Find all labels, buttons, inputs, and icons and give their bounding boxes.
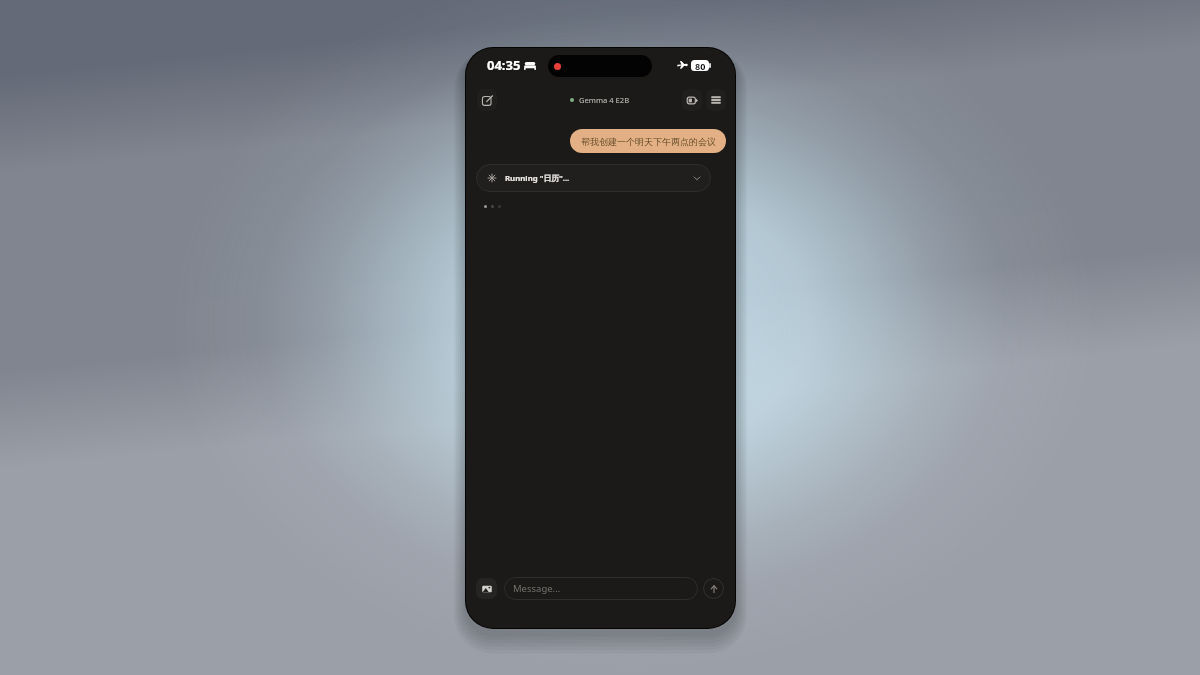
button[interactable]: Context usage bbox=[682, 89, 702, 111]
staticText: Running "日历"... bbox=[505, 173, 570, 184]
button[interactable]: Running "日历"... bbox=[476, 164, 711, 192]
staticText: 80 bbox=[695, 60, 706, 71]
button[interactable]: Send bbox=[703, 578, 724, 599]
button[interactable]: 帮我创建一个明天下午两点的会议 bbox=[570, 129, 726, 153]
button[interactable]: Attach image bbox=[476, 578, 497, 599]
staticText: Message... bbox=[513, 582, 561, 595]
button[interactable]: Settings bbox=[706, 89, 726, 111]
staticText: Gemma 4 E2B bbox=[579, 95, 630, 105]
staticText: 帮我创建一个明天下午两点的会议 bbox=[581, 136, 716, 147]
staticText: 04:35 bbox=[487, 56, 521, 74]
button[interactable]: Message... bbox=[504, 577, 698, 600]
button[interactable]: New chat bbox=[477, 89, 497, 111]
